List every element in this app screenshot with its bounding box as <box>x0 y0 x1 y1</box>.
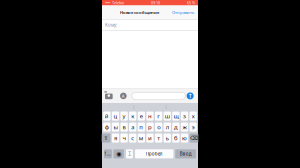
staticText: й <box>105 112 109 120</box>
staticText: х <box>192 112 195 120</box>
staticText: и <box>148 134 152 142</box>
staticText: 65 % <box>187 0 195 5</box>
button[interactable]: ь <box>164 133 171 143</box>
staticText: 09:10 <box>151 0 160 5</box>
button[interactable]: а <box>129 122 136 132</box>
button[interactable]: Apps <box>120 92 127 100</box>
button[interactable]: г <box>155 111 162 121</box>
button[interactable]: ш <box>164 111 171 121</box>
staticText: а <box>131 123 134 131</box>
staticText: б <box>174 134 178 142</box>
staticText: м <box>139 134 144 142</box>
button[interactable]: о <box>155 122 162 132</box>
staticText: ••••• Telefon <box>105 0 124 5</box>
button[interactable]: л <box>164 122 171 132</box>
staticText: п <box>139 123 143 131</box>
staticText: я <box>114 134 117 142</box>
staticText: ы <box>113 123 117 131</box>
staticText: ↑ <box>188 92 193 99</box>
staticText: ю <box>182 134 187 142</box>
button[interactable]: ⇧ <box>102 133 110 143</box>
button[interactable]: Отправить <box>168 5 198 19</box>
staticText: ◉ <box>116 150 121 157</box>
button[interactable]: 123 <box>104 149 112 158</box>
staticText: э <box>192 123 195 131</box>
button[interactable]: з <box>181 111 188 121</box>
button[interactable]: т <box>155 133 162 143</box>
staticText: к <box>131 112 134 120</box>
staticText: Кому: <box>105 22 117 28</box>
staticText: у <box>123 112 126 120</box>
staticText: ц <box>113 112 117 120</box>
staticText: ш <box>165 112 170 120</box>
button[interactable]: ю <box>181 133 188 143</box>
staticText: ⇧ <box>104 135 109 141</box>
staticText: в <box>123 123 126 131</box>
button[interactable]: я <box>112 133 119 143</box>
button[interactable]: й <box>103 111 110 121</box>
button[interactable]: п <box>138 122 145 132</box>
button[interactable]: с <box>129 133 136 143</box>
staticText: е <box>140 112 143 120</box>
staticText: с <box>131 134 134 142</box>
button[interactable]: ж <box>181 122 188 132</box>
button[interactable]: э <box>189 122 197 132</box>
staticText: ф <box>105 123 109 131</box>
button[interactable]: н <box>146 111 154 121</box>
button[interactable]: р <box>146 122 154 132</box>
staticText: г <box>157 112 160 120</box>
button[interactable]: к <box>129 111 136 121</box>
staticText: Новое сообщение <box>120 9 159 15</box>
button[interactable]: ф <box>103 122 110 132</box>
button[interactable]: Send <box>187 92 194 99</box>
button[interactable]: Ввод <box>175 149 196 158</box>
staticText: з <box>183 112 186 120</box>
staticText: ж <box>182 123 186 131</box>
staticText: ⌶ <box>128 151 131 157</box>
staticText: ч <box>123 134 126 142</box>
button[interactable]: ч <box>120 133 128 143</box>
staticText: Пробел <box>146 151 163 157</box>
staticText: Ввод <box>180 151 192 157</box>
staticText: ь <box>166 134 169 142</box>
staticText: ⌫ <box>190 135 198 141</box>
button[interactable]: у <box>120 111 128 121</box>
staticText: 123 <box>104 151 112 157</box>
button[interactable]: и <box>146 133 154 143</box>
button[interactable]: х <box>189 111 197 121</box>
staticText: р <box>148 123 152 131</box>
button[interactable]: ⌶ <box>126 149 133 158</box>
button[interactable]: е <box>138 111 145 121</box>
staticText: A <box>122 93 125 99</box>
staticText: н <box>148 112 152 120</box>
button[interactable]: б <box>172 133 179 143</box>
button[interactable]: ы <box>112 122 119 132</box>
button[interactable]: ◉ <box>113 149 124 158</box>
button[interactable]: в <box>120 122 128 132</box>
staticText: о <box>157 123 160 131</box>
staticText: д <box>174 123 178 131</box>
button[interactable]: ц <box>112 111 119 121</box>
button[interactable]: щ <box>172 111 179 121</box>
staticText: щ <box>173 112 178 120</box>
button[interactable]: Take photo <box>105 92 113 100</box>
button[interactable]: Пробел <box>135 149 173 158</box>
button[interactable]: м <box>138 133 145 143</box>
staticText: л <box>166 123 169 131</box>
button[interactable]: ⌫ <box>189 133 198 143</box>
staticText: т <box>157 134 160 142</box>
button[interactable]: д <box>172 122 179 132</box>
staticText: Отправить <box>172 9 194 15</box>
